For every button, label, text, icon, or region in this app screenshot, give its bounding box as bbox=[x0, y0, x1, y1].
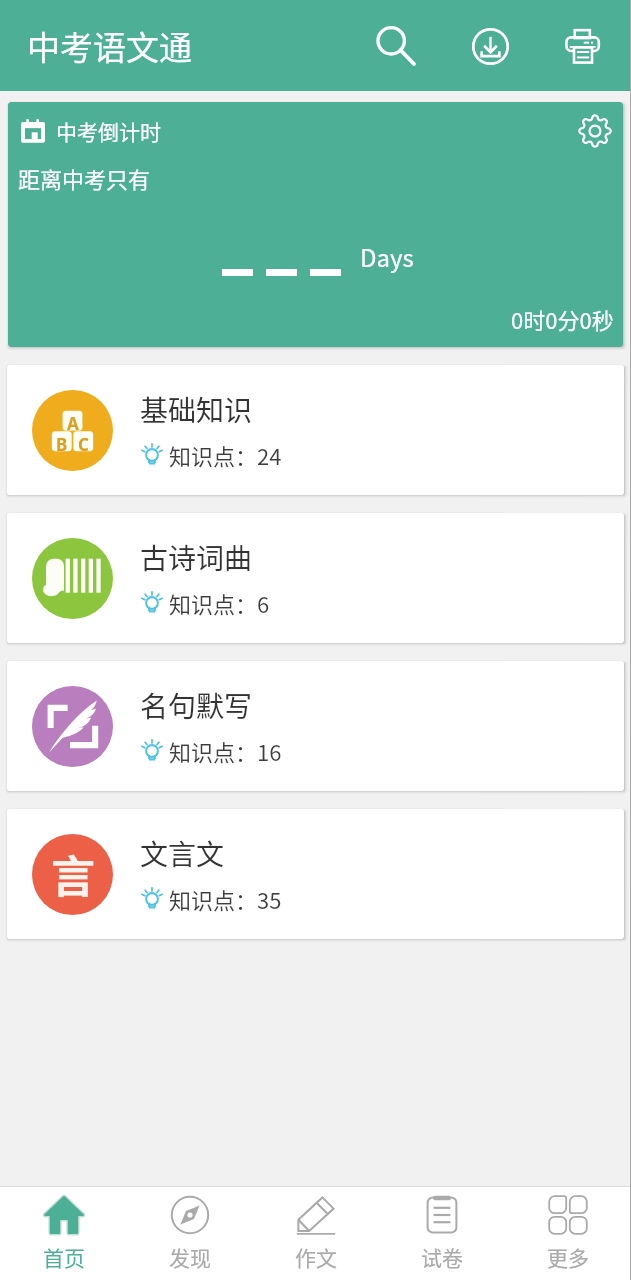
staticText: 试卷 bbox=[421, 1242, 463, 1272]
button[interactable]: 发现 bbox=[127, 1187, 253, 1280]
staticText: 发现 bbox=[169, 1242, 211, 1272]
staticText: 距离中考只有 bbox=[18, 162, 151, 194]
button[interactable]: 名句默写 bbox=[7, 661, 624, 791]
staticText: A bbox=[67, 412, 79, 435]
button[interactable]: 古诗词曲 bbox=[7, 513, 624, 643]
button[interactable]: 更多 bbox=[505, 1187, 631, 1280]
button[interactable]: Settings bbox=[573, 109, 617, 153]
staticText: 中考倒计时 bbox=[56, 116, 161, 146]
staticText: C bbox=[78, 433, 89, 456]
button[interactable]: Search bbox=[365, 15, 427, 77]
staticText: 言 bbox=[51, 842, 95, 906]
staticText: 0时0分0秒 bbox=[511, 303, 614, 335]
staticText: 更多 bbox=[547, 1242, 589, 1272]
staticText: B bbox=[56, 433, 68, 456]
staticText: 文言文 bbox=[140, 833, 225, 874]
staticText: 基础知识 bbox=[140, 389, 253, 430]
staticText: 知识点：35 bbox=[169, 883, 282, 915]
button[interactable]: 试卷 bbox=[379, 1187, 505, 1280]
button[interactable]: A bbox=[7, 365, 624, 495]
staticText: 知识点：6 bbox=[169, 587, 270, 619]
button[interactable]: 作文 bbox=[253, 1187, 379, 1280]
button[interactable]: 首页 bbox=[0, 1187, 127, 1280]
staticText: Days bbox=[360, 239, 414, 274]
staticText: 作文 bbox=[295, 1242, 337, 1272]
staticText: 知识点：16 bbox=[169, 735, 282, 767]
button[interactable]: Print bbox=[552, 15, 614, 77]
staticText: 中考语文通 bbox=[27, 22, 192, 70]
staticText: 名句默写 bbox=[140, 685, 253, 726]
button[interactable]: Download bbox=[459, 15, 521, 77]
staticText: 知识点：24 bbox=[169, 439, 282, 471]
button[interactable]: 中考倒计时 bbox=[8, 102, 623, 347]
staticText: 首页 bbox=[43, 1242, 85, 1272]
button[interactable]: 言 bbox=[7, 809, 624, 939]
staticText: 古诗词曲 bbox=[140, 537, 253, 578]
